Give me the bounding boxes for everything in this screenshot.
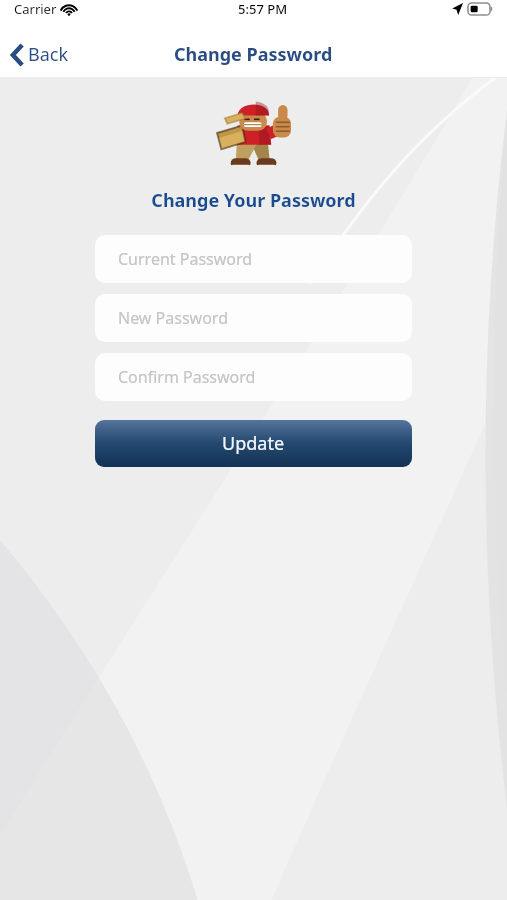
staticText: Confirm Password xyxy=(118,366,256,388)
staticText: Current Password xyxy=(118,248,253,270)
button[interactable]: Back xyxy=(0,36,81,73)
button[interactable]: New Password xyxy=(95,294,412,342)
button[interactable]: Update xyxy=(95,420,412,467)
staticText: Change Your Password xyxy=(151,188,356,213)
button[interactable]: Confirm Password xyxy=(95,353,412,401)
staticText: 5:57 PM xyxy=(238,0,288,18)
staticText: Change Password xyxy=(174,42,333,67)
staticText: Back xyxy=(28,42,69,67)
staticText: Carrier xyxy=(14,0,57,18)
staticText: New Password xyxy=(118,307,228,329)
staticText: Update xyxy=(222,431,285,456)
button[interactable]: Current Password xyxy=(95,235,412,283)
